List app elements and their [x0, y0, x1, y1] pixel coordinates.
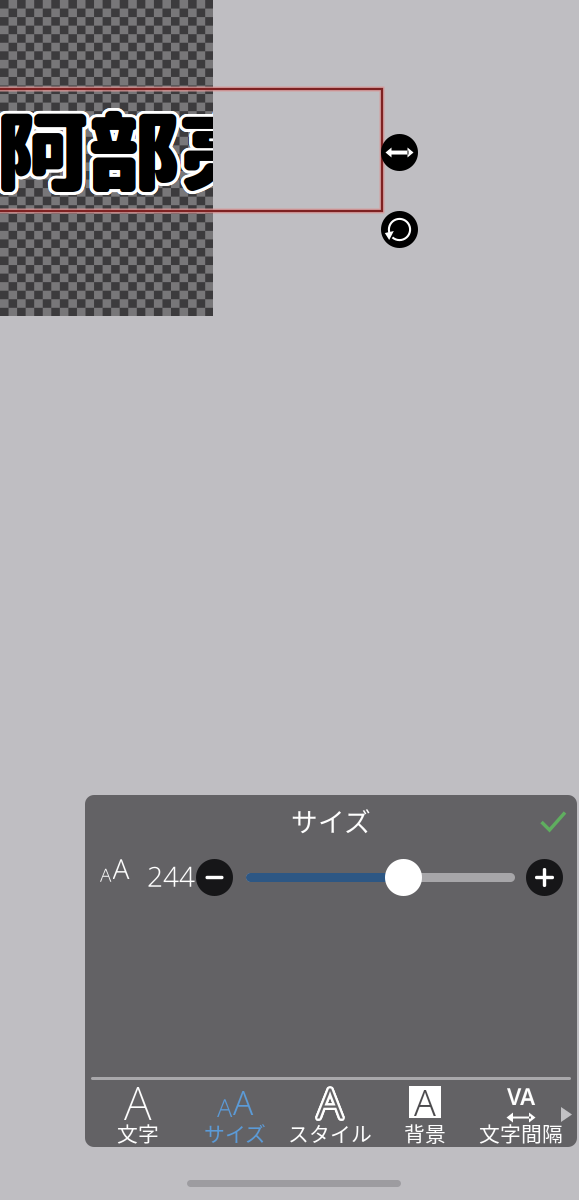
button[interactable]: Increase: [526, 859, 563, 896]
button[interactable]: Decrease: [196, 859, 233, 896]
button[interactable]: Resize: [381, 134, 418, 171]
staticText: サイズ: [291, 801, 371, 839]
staticText: 阿部亮: [0, 87, 282, 219]
staticText: VA: [507, 1081, 535, 1111]
staticText: A: [319, 1075, 345, 1132]
staticText: 文字: [117, 1118, 159, 1148]
staticText: A: [315, 1075, 341, 1131]
staticText: 阿部亮: [0, 91, 285, 223]
staticText: A: [319, 1073, 345, 1129]
button[interactable]: Done: [530, 801, 577, 842]
staticText: 阿部亮: [0, 90, 279, 222]
staticText: 阿部亮: [0, 92, 279, 224]
staticText: A: [315, 1075, 341, 1132]
staticText: 阿部亮: [0, 87, 280, 219]
staticText: 阿部亮: [0, 92, 285, 224]
staticText: 阿部亮: [0, 91, 279, 223]
staticText: A: [316, 1071, 342, 1128]
staticText: A: [112, 850, 129, 887]
staticText: スタイル: [288, 1118, 372, 1148]
staticText: A: [124, 1071, 152, 1133]
staticText: 阿部亮: [0, 89, 285, 221]
button[interactable]: A: [270, 1080, 390, 1145]
button[interactable]: A: [365, 1080, 485, 1145]
staticText: 文字間隔: [479, 1118, 563, 1148]
staticText: A: [414, 1078, 436, 1126]
staticText: 阿部亮: [0, 90, 285, 222]
staticText: A: [318, 1076, 344, 1132]
staticText: 阿部亮: [0, 93, 281, 225]
staticText: A: [315, 1074, 341, 1130]
staticText: 阿部亮: [0, 87, 284, 219]
staticText: 阿部亮: [0, 93, 284, 225]
staticText: 阿部亮: [0, 87, 281, 219]
staticText: A: [319, 1074, 345, 1130]
staticText: 阿部亮: [0, 90, 282, 222]
button[interactable]: A: [175, 1080, 295, 1145]
button[interactable]: Rotate: [381, 211, 418, 248]
staticText: 阿部亮: [0, 87, 283, 219]
staticText: 阿部亮: [0, 93, 280, 225]
staticText: サイズ: [204, 1118, 266, 1148]
button[interactable]: VA: [461, 1080, 579, 1145]
staticText: A: [319, 1075, 345, 1131]
staticText: 阿部亮: [0, 93, 283, 225]
staticText: A: [217, 1090, 232, 1124]
staticText: A: [100, 862, 111, 887]
staticText: 背景: [404, 1118, 446, 1148]
staticText: A: [319, 1072, 345, 1129]
staticText: 阿部亮: [0, 89, 279, 221]
staticText: 244: [147, 857, 195, 895]
staticText: A: [315, 1073, 341, 1129]
staticText: A: [316, 1076, 342, 1132]
staticText: A: [317, 1076, 343, 1133]
button[interactable]: A: [78, 1080, 198, 1145]
staticText: A: [315, 1072, 341, 1129]
staticText: A: [317, 1071, 343, 1128]
staticText: A: [233, 1080, 253, 1124]
staticText: 阿部亮: [0, 88, 285, 220]
staticText: 阿部亮: [0, 88, 279, 220]
staticText: A: [318, 1071, 344, 1128]
staticText: A: [317, 1074, 343, 1130]
staticText: 阿部亮: [0, 93, 282, 225]
